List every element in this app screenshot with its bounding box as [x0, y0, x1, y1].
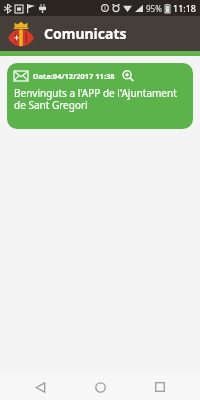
button[interactable]: Data:04/12/2017 11:38	[7, 63, 193, 129]
staticText: Benvinguts a l'APP de l'Ajuntament de Sa…	[14, 86, 186, 112]
staticText: 11:18	[173, 2, 197, 14]
button[interactable]: Recent apps	[140, 374, 180, 400]
button[interactable]: Back	[20, 374, 60, 400]
button[interactable]: Ajuntament de Sant Gregori logo	[6, 19, 36, 49]
staticText: 95%	[146, 3, 162, 14]
button[interactable]: Home	[80, 374, 120, 400]
staticText: Data:04/12/2017 11:38	[33, 71, 115, 81]
button[interactable]: Zoom in	[121, 69, 134, 82]
staticText: Comunicats	[44, 24, 127, 43]
